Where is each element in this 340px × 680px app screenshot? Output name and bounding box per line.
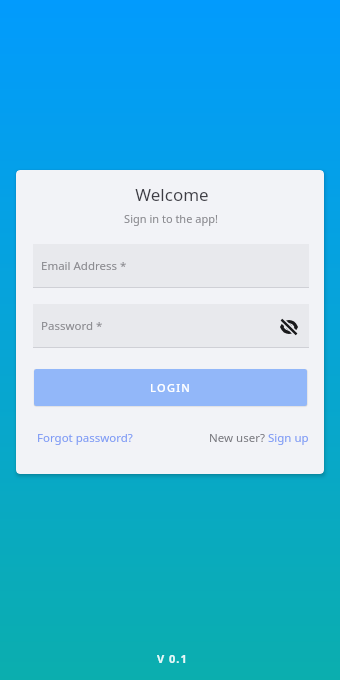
staticText: Welcome <box>18 183 324 206</box>
staticText: New user? <box>209 430 268 446</box>
staticText: Password * <box>41 318 103 334</box>
button[interactable]: Sign up <box>268 428 309 448</box>
staticText: LOGIN <box>150 380 192 395</box>
button[interactable]: Password * <box>33 304 309 347</box>
button[interactable]: Forgot password? <box>37 428 133 448</box>
staticText: Email Address * <box>41 258 127 274</box>
button[interactable]: LOGIN <box>34 369 307 406</box>
staticText: V 0.1 <box>157 651 188 666</box>
staticText: Sign in to the app! <box>17 211 324 226</box>
button[interactable]: Toggle password visibility <box>278 315 300 337</box>
button[interactable]: Email Address * <box>33 244 309 287</box>
